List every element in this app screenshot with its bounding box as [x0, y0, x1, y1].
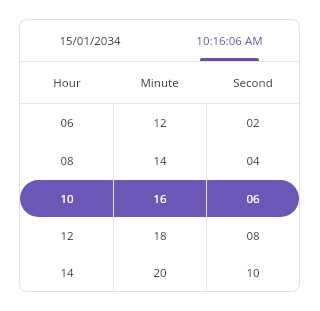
button[interactable]: 12	[20, 217, 113, 254]
staticText: 02	[246, 115, 260, 131]
staticText: 06	[60, 115, 74, 131]
staticText: 18	[153, 228, 167, 244]
staticText: Hour	[53, 75, 81, 91]
button[interactable]: 02	[206, 104, 299, 142]
staticText: Minute	[140, 75, 179, 91]
staticText: 16	[153, 191, 167, 207]
button[interactable]: 12	[113, 104, 206, 142]
button[interactable]: 15/01/2034	[20, 20, 159, 61]
button[interactable]: 10	[206, 254, 299, 291]
button[interactable]: 04	[206, 142, 299, 180]
button[interactable]: 14	[20, 254, 113, 291]
staticText: Second	[233, 75, 273, 91]
staticText: 14	[60, 265, 74, 281]
button[interactable]: 10:16:06 AM	[159, 20, 299, 61]
staticText: 04	[246, 153, 260, 169]
button[interactable]: 14	[113, 142, 206, 180]
staticText: 08	[246, 228, 260, 244]
staticText: 15/01/2034	[59, 33, 121, 49]
button[interactable]: 08	[20, 142, 113, 180]
staticText: 08	[60, 153, 74, 169]
staticText: 12	[153, 115, 167, 131]
button[interactable]: Hour	[20, 62, 113, 103]
button[interactable]: 06	[20, 104, 113, 142]
button[interactable]: 08	[206, 217, 299, 254]
button[interactable]: Second	[206, 62, 299, 103]
staticText: 06	[246, 191, 260, 207]
staticText: 10	[246, 265, 260, 281]
staticText: 12	[60, 228, 74, 244]
button[interactable]: 16	[113, 180, 206, 217]
button[interactable]: 06	[206, 180, 299, 217]
staticText: 10:16:06 AM	[196, 33, 263, 49]
button[interactable]: 20	[113, 254, 206, 291]
staticText: 10	[60, 191, 74, 207]
button[interactable]: 18	[113, 217, 206, 254]
staticText: 14	[153, 153, 167, 169]
staticText: 20	[153, 265, 167, 281]
button[interactable]: 10	[20, 180, 113, 217]
button[interactable]: Minute	[113, 62, 206, 103]
